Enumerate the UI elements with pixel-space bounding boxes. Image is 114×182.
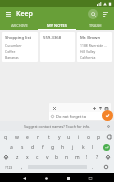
button[interactable]: Add xyxy=(91,105,97,111)
button[interactable]: x xyxy=(22,152,32,162)
staticText: California xyxy=(80,55,96,59)
button[interactable]: v xyxy=(42,152,52,162)
staticText: d xyxy=(31,144,35,151)
staticText: ! xyxy=(86,154,88,161)
staticText: b xyxy=(55,154,59,161)
staticText: j xyxy=(72,144,74,151)
staticText: ?123 xyxy=(5,165,13,170)
staticText: Coffee xyxy=(5,49,16,54)
staticText: 559-3368 xyxy=(43,35,62,41)
button[interactable]: a xyxy=(6,142,17,152)
button[interactable]: m xyxy=(72,152,82,162)
staticText: Keep xyxy=(16,9,33,19)
button[interactable]: Done xyxy=(102,110,113,121)
button[interactable]: d xyxy=(28,142,38,152)
button[interactable]: p xyxy=(94,132,104,142)
staticText: MY NOTES xyxy=(47,23,67,28)
button[interactable]: y xyxy=(54,132,64,142)
button[interactable]: Archive xyxy=(103,105,109,111)
staticText: w xyxy=(15,134,19,141)
button[interactable]: Menu xyxy=(4,10,13,19)
button[interactable]: s xyxy=(17,142,28,152)
staticText: n xyxy=(65,154,69,161)
staticText: Hill Valley xyxy=(80,49,96,54)
staticText: s xyxy=(21,144,24,151)
staticText: r xyxy=(37,134,40,141)
button[interactable]: Pin xyxy=(97,105,103,111)
button[interactable]: o xyxy=(84,132,94,142)
button[interactable]: ! xyxy=(82,152,92,162)
button[interactable]: Emoji xyxy=(98,162,114,172)
button[interactable]: Search xyxy=(88,9,98,19)
button[interactable]: Shopping list xyxy=(2,32,38,62)
button[interactable]: View options xyxy=(101,10,110,19)
button[interactable]: , xyxy=(17,162,27,172)
staticText: p xyxy=(97,134,101,141)
staticText: f xyxy=(42,144,44,151)
button[interactable]: . xyxy=(88,162,98,172)
button[interactable]: w xyxy=(11,132,22,142)
staticText: . xyxy=(92,164,94,171)
staticText: TRASH xyxy=(89,23,102,28)
button[interactable]: Enter xyxy=(98,142,114,152)
button[interactable]: u xyxy=(64,132,74,142)
staticText: l xyxy=(92,144,94,151)
staticText: , xyxy=(21,164,23,171)
staticText: a xyxy=(10,144,13,151)
button[interactable]: Settings xyxy=(105,123,112,130)
button[interactable]: Shift xyxy=(102,152,114,162)
button[interactable]: TRASH xyxy=(76,21,114,30)
button[interactable]: Keyboard down xyxy=(86,174,94,182)
staticText: z xyxy=(16,154,19,161)
button[interactable]: b xyxy=(52,152,62,162)
button[interactable]: Home xyxy=(42,174,50,182)
button[interactable]: Mr. Brown xyxy=(77,32,112,62)
button[interactable]: h xyxy=(58,142,68,152)
staticText: g xyxy=(51,144,55,151)
button[interactable]: l xyxy=(88,142,98,152)
staticText: m xyxy=(75,154,80,161)
staticText: ARCHIVE xyxy=(11,23,28,28)
button[interactable]: q xyxy=(0,132,11,142)
staticText: c xyxy=(36,154,39,161)
button[interactable]: Back xyxy=(20,174,28,182)
button[interactable]: Shift xyxy=(0,152,12,162)
button[interactable]: i xyxy=(74,132,84,142)
button[interactable]: t xyxy=(44,132,54,142)
button[interactable]: k xyxy=(78,142,88,152)
button[interactable]: n xyxy=(62,152,72,162)
button[interactable]: Close xyxy=(51,105,57,111)
button[interactable]: g xyxy=(48,142,58,152)
staticText: Bananas xyxy=(5,55,19,59)
staticText: v xyxy=(46,154,49,161)
button[interactable]: j xyxy=(68,142,78,152)
staticText: k xyxy=(82,144,85,151)
button[interactable]: MY NOTES xyxy=(38,21,76,30)
staticText: ? xyxy=(96,154,99,161)
button[interactable]: c xyxy=(32,152,42,162)
staticText: i xyxy=(78,134,80,141)
button[interactable]: r xyxy=(33,132,44,142)
staticText: y xyxy=(58,134,61,141)
staticText: q xyxy=(4,134,8,141)
staticText: x xyxy=(26,154,29,161)
button[interactable]: ARCHIVE xyxy=(0,21,38,30)
button[interactable]: Do not forget to xyxy=(49,112,111,120)
button[interactable]: e xyxy=(22,132,33,142)
button[interactable]: 559-3368 xyxy=(40,32,75,62)
button[interactable]: ? xyxy=(92,152,102,162)
button[interactable]: ?123 xyxy=(0,162,17,172)
button[interactable]: Recents xyxy=(64,174,72,182)
button[interactable]: z xyxy=(12,152,22,162)
staticText: Do not forget to xyxy=(56,114,87,119)
staticText: Mr. Brown xyxy=(80,35,101,41)
staticText: Suggest contact names? Touch for info. xyxy=(24,124,91,129)
staticText: t xyxy=(48,134,50,141)
staticText: Cucumber xyxy=(5,43,22,48)
staticText: h xyxy=(61,144,65,151)
staticText: Shopping list xyxy=(5,35,32,41)
button[interactable]: f xyxy=(38,142,48,152)
staticText: e xyxy=(26,134,29,141)
button[interactable]: Backspace xyxy=(104,132,114,142)
